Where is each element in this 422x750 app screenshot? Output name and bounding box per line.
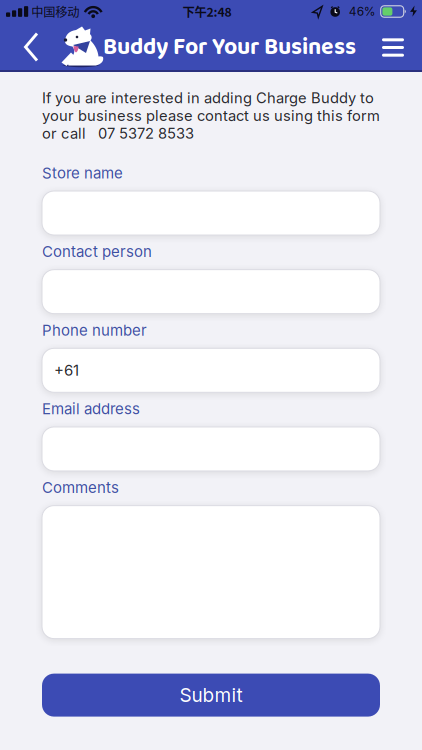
staticText: Contact person [42,242,152,261]
button[interactable]: Menu [374,30,412,65]
button[interactable]: Comments [42,506,380,639]
staticText: Phone number [42,321,147,339]
staticText: Buddy For Your Business [103,29,356,66]
staticText: Submit [179,684,242,707]
button[interactable]: Submit [42,674,380,717]
staticText: If you are interested in adding Charge B… [42,89,380,142]
staticText: Email address [42,400,140,418]
button[interactable]: Store name [42,191,380,235]
button[interactable]: Phone number [42,348,380,392]
button[interactable]: Back [0,26,42,68]
staticText: +61 [54,361,79,379]
staticText: Comments [42,478,119,497]
staticText: 下午2:48 [182,3,231,20]
staticText: 中国移动 [31,3,79,20]
staticText: Store name [42,164,123,182]
staticText: 46% [349,4,376,19]
button[interactable]: Contact person [42,270,380,314]
button[interactable]: Email address [42,427,380,471]
